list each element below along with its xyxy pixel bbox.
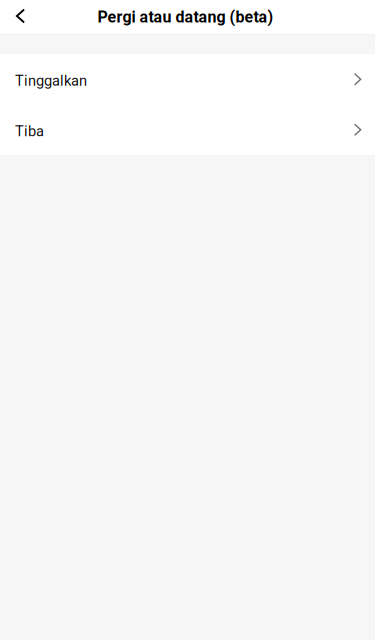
staticText: Tiba [15, 123, 44, 140]
staticText: Tinggalkan [15, 72, 87, 89]
staticText: Pergi atau datang (beta) [97, 8, 273, 26]
button[interactable]: Tiba [0, 104, 375, 155]
button[interactable]: Tinggalkan [0, 54, 375, 104]
button[interactable]: Back [0, 0, 40, 34]
